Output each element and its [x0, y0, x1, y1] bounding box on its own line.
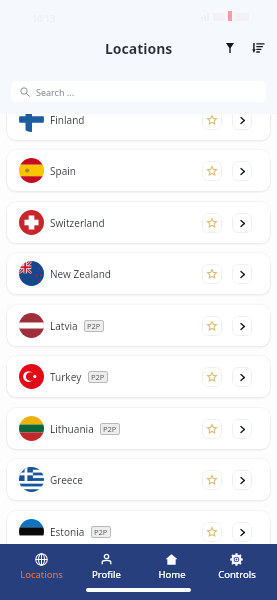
staticText: Estonia — [50, 525, 85, 539]
button[interactable]: Filter — [220, 38, 240, 58]
button[interactable]: Open Finland — [232, 114, 252, 130]
button[interactable]: Switzerland — [7, 202, 270, 243]
staticText: Home — [158, 568, 186, 581]
staticText: Locations — [105, 39, 173, 58]
button[interactable]: Open Switzerland — [232, 213, 252, 233]
button[interactable]: Finland — [7, 114, 270, 140]
staticText: Lithuania — [50, 422, 94, 436]
button[interactable]: Profile — [74, 553, 139, 589]
staticText: Finland — [50, 114, 85, 127]
button[interactable]: Spain — [7, 150, 270, 191]
staticText: P2P — [91, 372, 105, 382]
button[interactable]: Add Finland to favorites — [202, 114, 222, 130]
staticText: Profile — [92, 568, 121, 581]
button[interactable]: Open Lithuania — [232, 419, 252, 439]
button[interactable]: Search ... — [11, 81, 266, 102]
staticText: Locations — [20, 568, 63, 581]
button[interactable]: Open Latvia — [232, 316, 252, 336]
staticText: P2P — [87, 321, 101, 331]
staticText: Latvia — [50, 319, 78, 333]
button[interactable]: Lithuania — [7, 408, 270, 449]
button[interactable]: Add Lithuania to favorites — [202, 419, 222, 439]
button[interactable]: Open Estonia — [232, 522, 252, 542]
staticText: Spain — [50, 164, 77, 178]
button[interactable]: Home — [139, 553, 204, 589]
button[interactable]: Add Latvia to favorites — [202, 316, 222, 336]
button[interactable]: Locations — [8, 553, 74, 589]
button[interactable]: New Zealand — [7, 253, 270, 294]
button[interactable]: Latvia — [7, 305, 270, 346]
button[interactable]: Open Spain — [232, 161, 252, 181]
staticText: New Zealand — [50, 267, 111, 281]
button[interactable]: Add Switzerland to favorites — [202, 213, 222, 233]
button[interactable]: Greece — [7, 459, 270, 500]
button[interactable]: Add Spain to favorites — [202, 161, 222, 181]
staticText: Greece — [50, 473, 83, 487]
staticText: Turkey — [50, 370, 82, 384]
button[interactable]: Add Estonia to favorites — [202, 522, 222, 542]
staticText: P2P — [103, 424, 117, 434]
button[interactable]: Add Turkey to favorites — [202, 367, 222, 387]
button[interactable]: Open Turkey — [232, 367, 252, 387]
staticText: P2P — [94, 527, 108, 537]
button[interactable]: Add New Zealand to favorites — [202, 264, 222, 284]
button[interactable]: Add Greece to favorites — [202, 470, 222, 490]
button[interactable]: Estonia — [7, 511, 270, 545]
button[interactable]: Open New Zealand — [232, 264, 252, 284]
button[interactable]: Sort — [248, 38, 268, 58]
staticText: Search ... — [36, 86, 75, 98]
button[interactable]: Turkey — [7, 356, 270, 397]
staticText: Switzerland — [50, 216, 105, 230]
button[interactable]: Controls — [204, 553, 269, 589]
button[interactable]: Open Greece — [232, 470, 252, 490]
staticText: Controls — [218, 568, 256, 581]
